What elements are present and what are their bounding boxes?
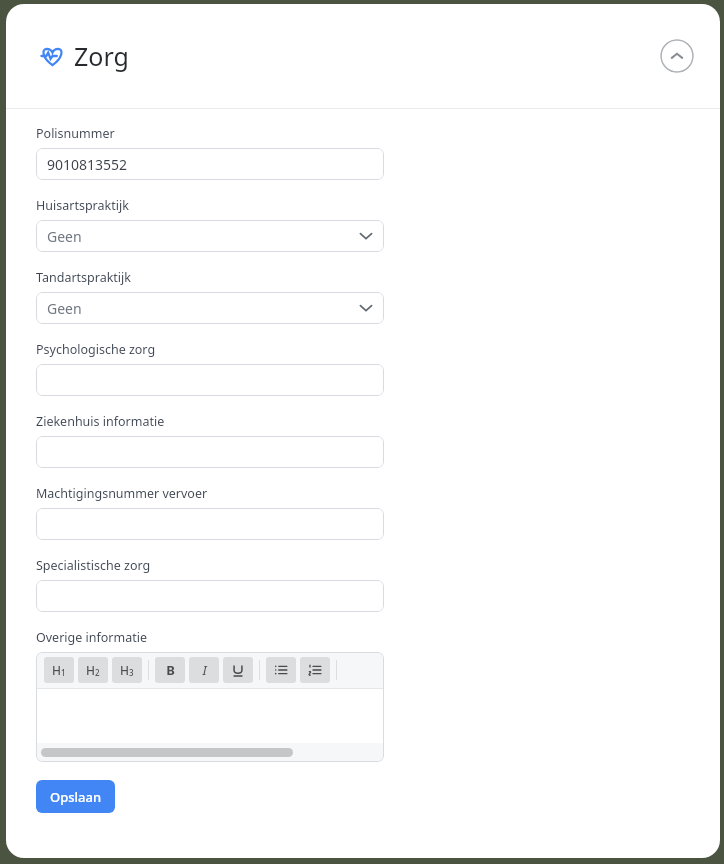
staticText: Specialistische zorg xyxy=(36,557,151,574)
staticText: B xyxy=(166,661,175,679)
button[interactable] xyxy=(300,657,330,683)
button[interactable] xyxy=(36,508,384,540)
button[interactable]: Geen xyxy=(36,220,384,252)
staticText: H xyxy=(120,662,129,678)
staticText: 3 xyxy=(129,667,134,678)
staticText: 9010813552 xyxy=(47,155,128,174)
button[interactable] xyxy=(223,657,253,683)
button[interactable]: 9010813552 xyxy=(36,148,384,180)
staticText: I xyxy=(202,661,207,679)
button[interactable]: H xyxy=(112,657,142,683)
button[interactable]: Collapse section xyxy=(660,39,694,73)
staticText: H xyxy=(86,662,95,678)
button[interactable]: Opslaan xyxy=(36,780,115,813)
button[interactable]: H xyxy=(78,657,108,683)
staticText: Tandartspraktijk xyxy=(36,269,131,286)
button[interactable] xyxy=(36,364,384,396)
staticText: 1 xyxy=(61,667,66,678)
staticText: H xyxy=(52,662,61,678)
button[interactable] xyxy=(266,657,296,683)
button[interactable] xyxy=(36,580,384,612)
staticText: Geen xyxy=(47,299,82,318)
staticText: Zorg xyxy=(74,39,129,73)
button[interactable]: Geen xyxy=(36,292,384,324)
staticText: Ziekenhuis informatie xyxy=(36,413,165,430)
button[interactable]: I xyxy=(189,657,219,683)
staticText: Polisnummer xyxy=(36,125,115,142)
button[interactable] xyxy=(36,436,384,468)
button[interactable]: H xyxy=(44,657,74,683)
staticText: Geen xyxy=(47,227,82,246)
staticText: 2 xyxy=(95,667,100,678)
staticText: Machtigingsnummer vervoer xyxy=(36,485,208,502)
button[interactable]: B xyxy=(155,657,185,683)
staticText: Huisartspraktijk xyxy=(36,197,129,214)
staticText: Overige informatie xyxy=(36,629,148,646)
staticText: Opslaan xyxy=(50,788,102,806)
staticText: Psychologische zorg xyxy=(36,341,156,358)
